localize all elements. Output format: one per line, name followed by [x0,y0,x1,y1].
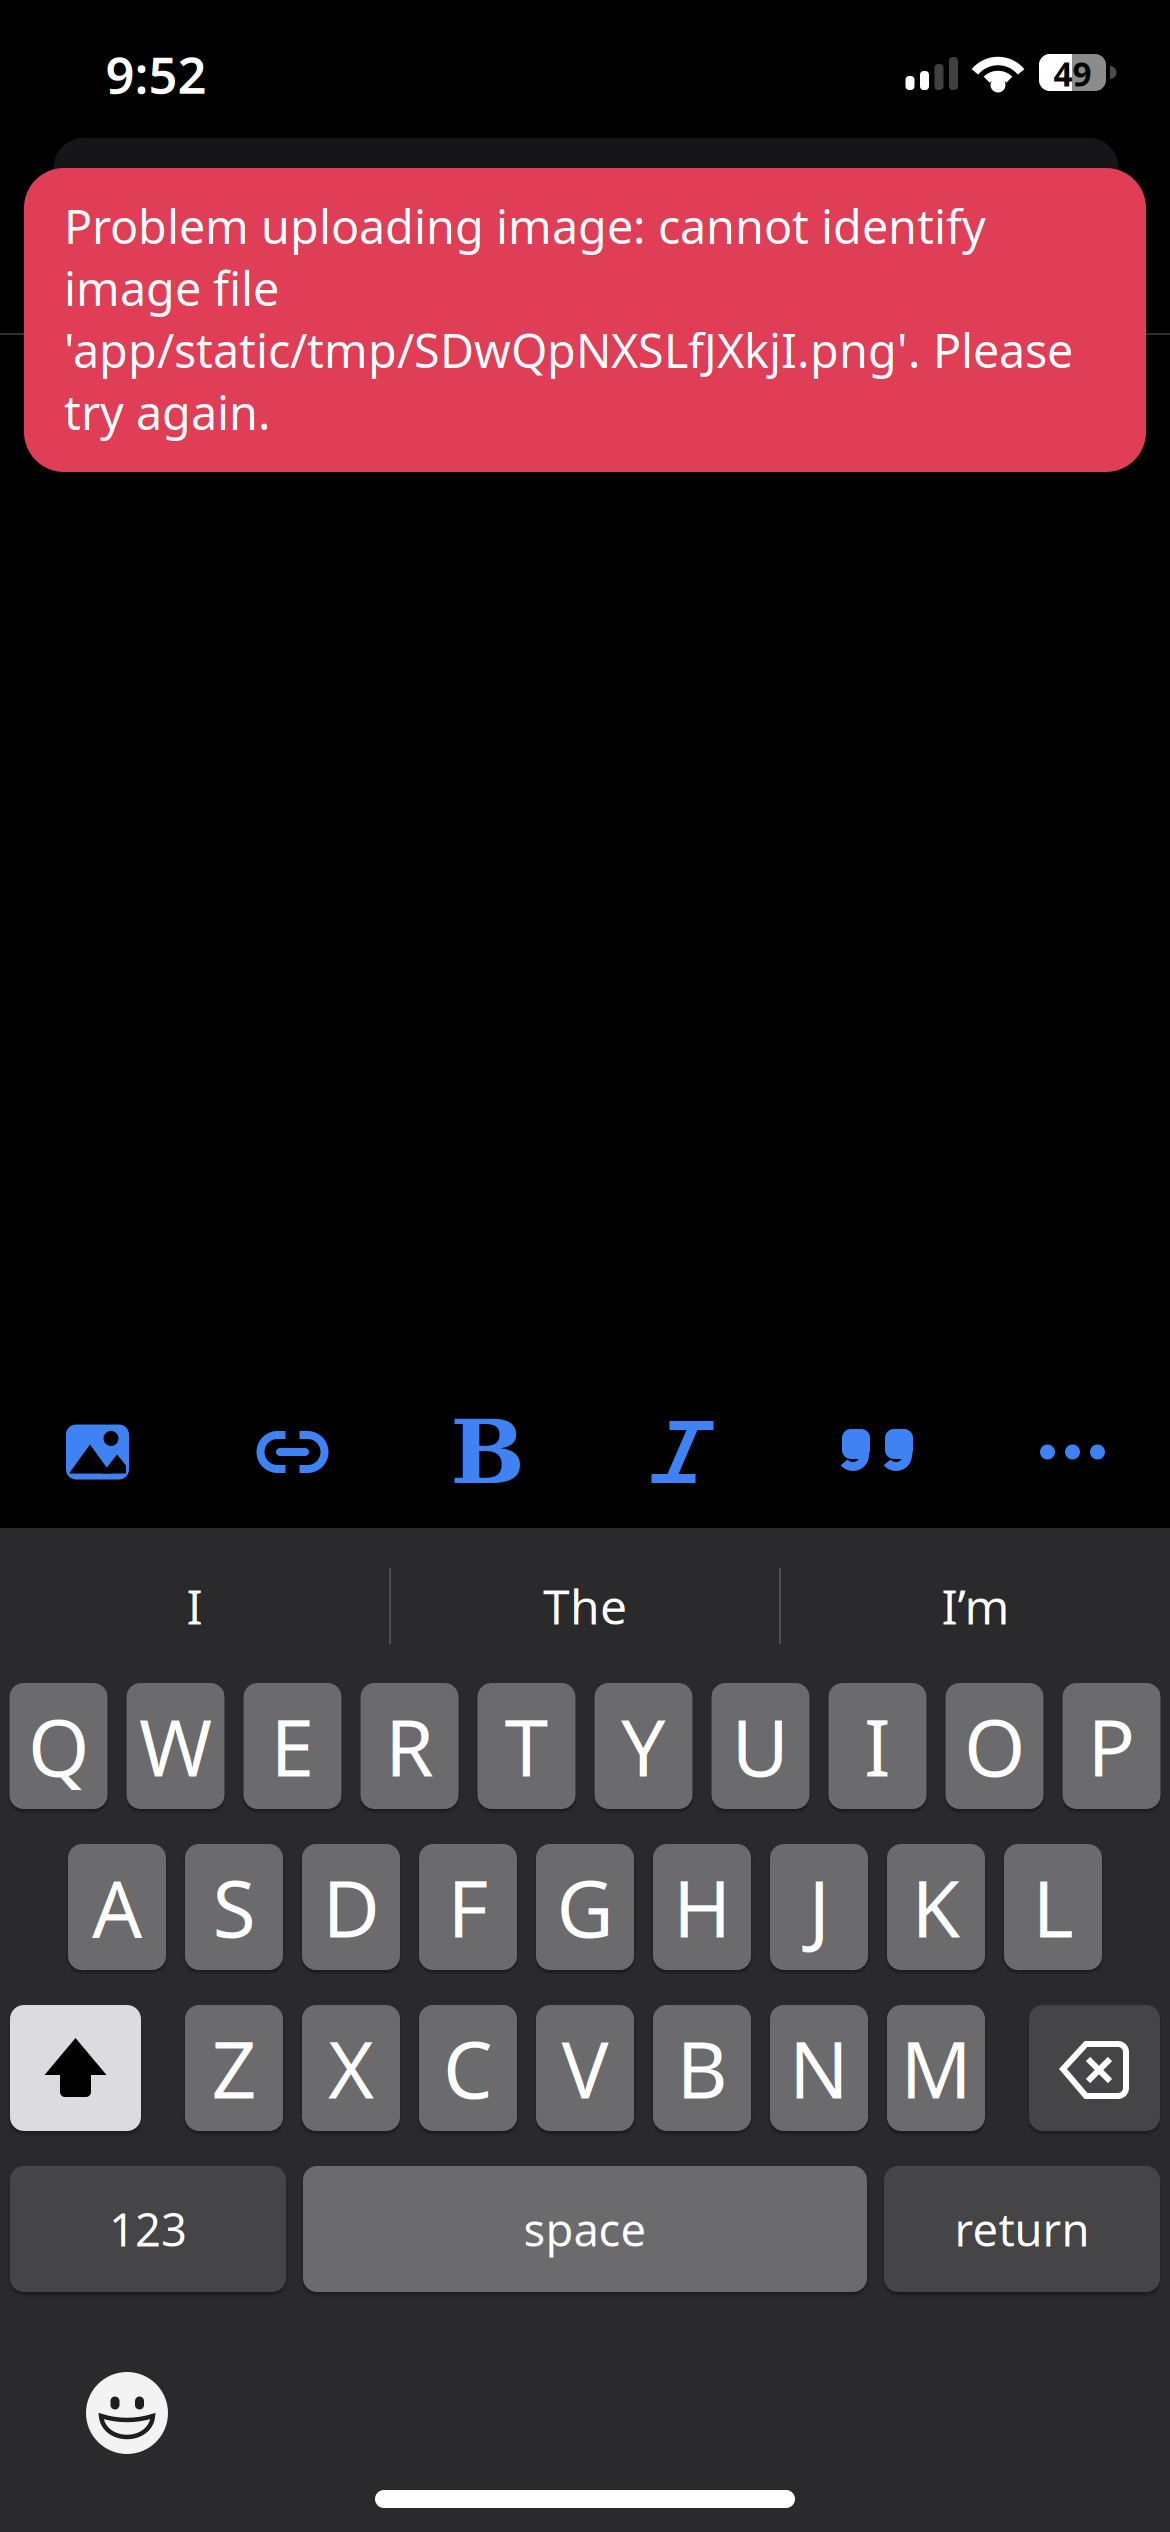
staticText: S [212,1855,255,1959]
button[interactable]: Q [9,1683,107,1809]
button[interactable]: H [653,1844,751,1970]
staticText: J [808,1855,829,1959]
staticText: O [964,1694,1025,1798]
staticText: V [561,2016,608,2120]
button[interactable]: I [828,1683,926,1809]
button[interactable]: Shift [10,2005,141,2131]
staticText: G [556,1855,613,1959]
button[interactable]: I [0,1528,389,1683]
staticText: X [328,2016,374,2120]
staticText: C [443,2016,493,2120]
button[interactable]: U [711,1683,809,1809]
button[interactable]: F [419,1844,517,1970]
staticText: M [900,2016,971,2120]
button[interactable]: I’m [781,1528,1170,1683]
staticText: N [789,2016,849,2120]
staticText: A [92,1855,142,1959]
staticText: 9:52 [105,40,206,108]
button[interactable]: C [419,2005,517,2131]
button[interactable]: R [360,1683,458,1809]
staticText: H [673,1855,731,1959]
button[interactable]: Z [185,2005,283,2131]
staticText: I [864,1694,891,1798]
staticText: I’m [941,1574,1009,1638]
button[interactable]: D [302,1844,400,1970]
staticText: B [676,2016,727,2120]
button[interactable]: G [536,1844,634,1970]
staticText: Q [28,1694,89,1798]
staticText: The [543,1574,627,1638]
button[interactable]: Problem uploading image: cannot identify… [24,168,1146,472]
button[interactable]: More formatting options [975,1387,1170,1516]
button[interactable]: L [1004,1844,1102,1970]
staticText: space [523,2199,646,2259]
button[interactable]: M [887,2005,985,2131]
button[interactable]: V [536,2005,634,2131]
staticText: P [1087,1694,1135,1798]
staticText: D [322,1855,379,1959]
button[interactable]: K [887,1844,985,1970]
staticText: T [504,1694,548,1798]
staticText: B [450,1400,524,1504]
button[interactable]: Insert link [195,1387,390,1516]
button[interactable]: A [68,1844,166,1970]
button[interactable]: Y [594,1683,692,1809]
button[interactable]: Delete [1029,2005,1160,2131]
button[interactable]: P [1062,1683,1160,1809]
button[interactable]: N [770,2005,868,2131]
button[interactable]: S [185,1844,283,1970]
staticText: return [954,2199,1089,2259]
staticText: U [731,1694,789,1798]
staticText: W [139,1694,212,1798]
button[interactable]: Quote [780,1387,975,1516]
button[interactable]: E [243,1683,341,1809]
button[interactable]: 123 [10,2166,286,2292]
staticText: Z [211,2016,256,2120]
staticText: 123 [109,2199,187,2259]
button[interactable]: return [884,2166,1160,2292]
button[interactable]: Insert image [0,1387,195,1516]
staticText: E [270,1694,314,1798]
button[interactable]: W [126,1683,224,1809]
staticText: 49 [1053,51,1091,96]
button[interactable]: T [477,1683,575,1809]
button[interactable]: Bold [390,1387,585,1516]
button[interactable]: X [302,2005,400,2131]
button[interactable]: Italic [585,1387,780,1516]
button[interactable]: J [770,1844,868,1970]
staticText: K [911,1855,960,1959]
staticText: Problem uploading image: cannot identify… [64,195,1073,443]
button[interactable]: The [391,1528,779,1683]
button[interactable]: space [303,2166,867,2292]
staticText: I [186,1574,202,1638]
button[interactable]: Emoji [86,2372,168,2454]
staticText: Y [621,1694,666,1798]
button[interactable]: O [945,1683,1043,1809]
button[interactable]: B [653,2005,751,2131]
staticText: L [1032,1855,1073,1959]
staticText: R [385,1694,434,1798]
staticText: F [447,1855,488,1959]
